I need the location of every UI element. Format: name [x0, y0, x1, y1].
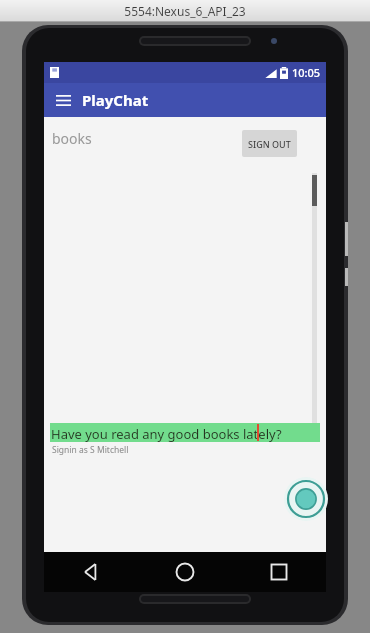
button[interactable]: Recent apps — [232, 552, 326, 592]
staticText: 10:05 — [292, 65, 321, 80]
staticText: Signin as S Mitchell — [52, 444, 129, 456]
button[interactable]: Home — [138, 552, 232, 592]
staticText: books — [52, 129, 92, 148]
button[interactable]: Send message — [284, 477, 328, 521]
staticText: SIGN OUT — [248, 138, 291, 150]
staticText: 5554:Nexus_6_API_23 — [124, 3, 246, 19]
button[interactable]: Back — [44, 552, 138, 592]
button[interactable]: SIGN OUT — [242, 130, 297, 157]
staticText: PlayChat — [82, 90, 149, 110]
staticText: Have you read any good books lately? — [51, 425, 282, 443]
button[interactable]: Open navigation drawer — [48, 85, 78, 115]
button[interactable] — [50, 423, 320, 442]
